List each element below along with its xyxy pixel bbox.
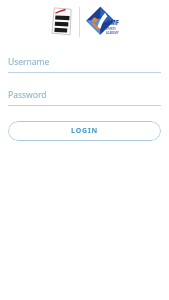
button[interactable]: Password [8,89,161,106]
staticText: LOGIN [71,126,98,136]
button[interactable]: LOGIN [8,121,161,141]
staticText: ACADEMY [106,31,119,35]
other: GMF Sports Academy [86,6,120,38]
staticText: GMF [106,19,119,27]
button[interactable]: Username [8,56,161,73]
other: Nike Sports Camps [50,6,74,38]
staticText: Username [8,56,50,68]
staticText: SPORTS [106,27,116,31]
staticText: Password [8,89,47,101]
